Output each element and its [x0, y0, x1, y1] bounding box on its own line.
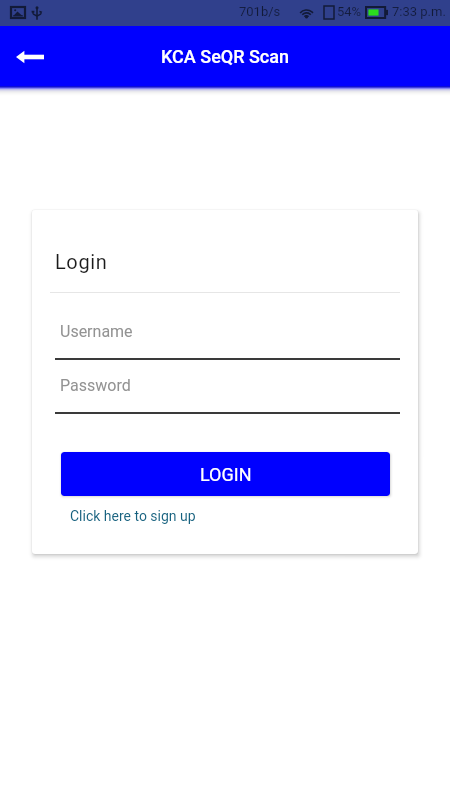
staticText: 54%	[337, 4, 362, 19]
staticText: 701b/s	[239, 4, 281, 19]
button[interactable]: Click here to sign up	[66, 504, 200, 528]
button[interactable]: Username	[55, 314, 400, 360]
staticText: Click here to sign up	[70, 508, 196, 524]
button[interactable]: Back	[8, 34, 52, 78]
staticText: 7:33 p.m.	[392, 4, 446, 19]
staticText: Username	[60, 322, 133, 341]
button[interactable]: Password	[55, 368, 400, 414]
staticText: Login	[55, 250, 108, 273]
button[interactable]: LOGIN	[61, 452, 390, 496]
staticText: KCA SeQR Scan	[161, 46, 290, 67]
staticText: Password	[60, 376, 131, 395]
staticText: LOGIN	[200, 464, 252, 485]
